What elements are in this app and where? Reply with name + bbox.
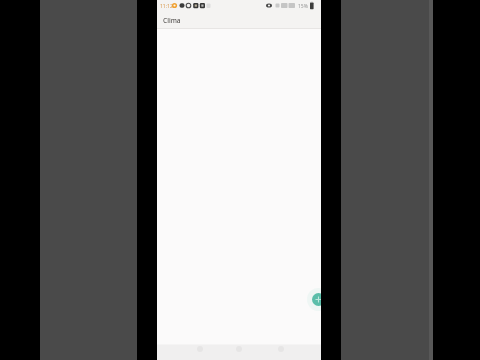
button[interactable]: [312, 293, 321, 306]
staticText: 11:12: [160, 3, 173, 10]
staticText: Clima: [163, 16, 181, 25]
staticText: 15%: [298, 3, 308, 10]
